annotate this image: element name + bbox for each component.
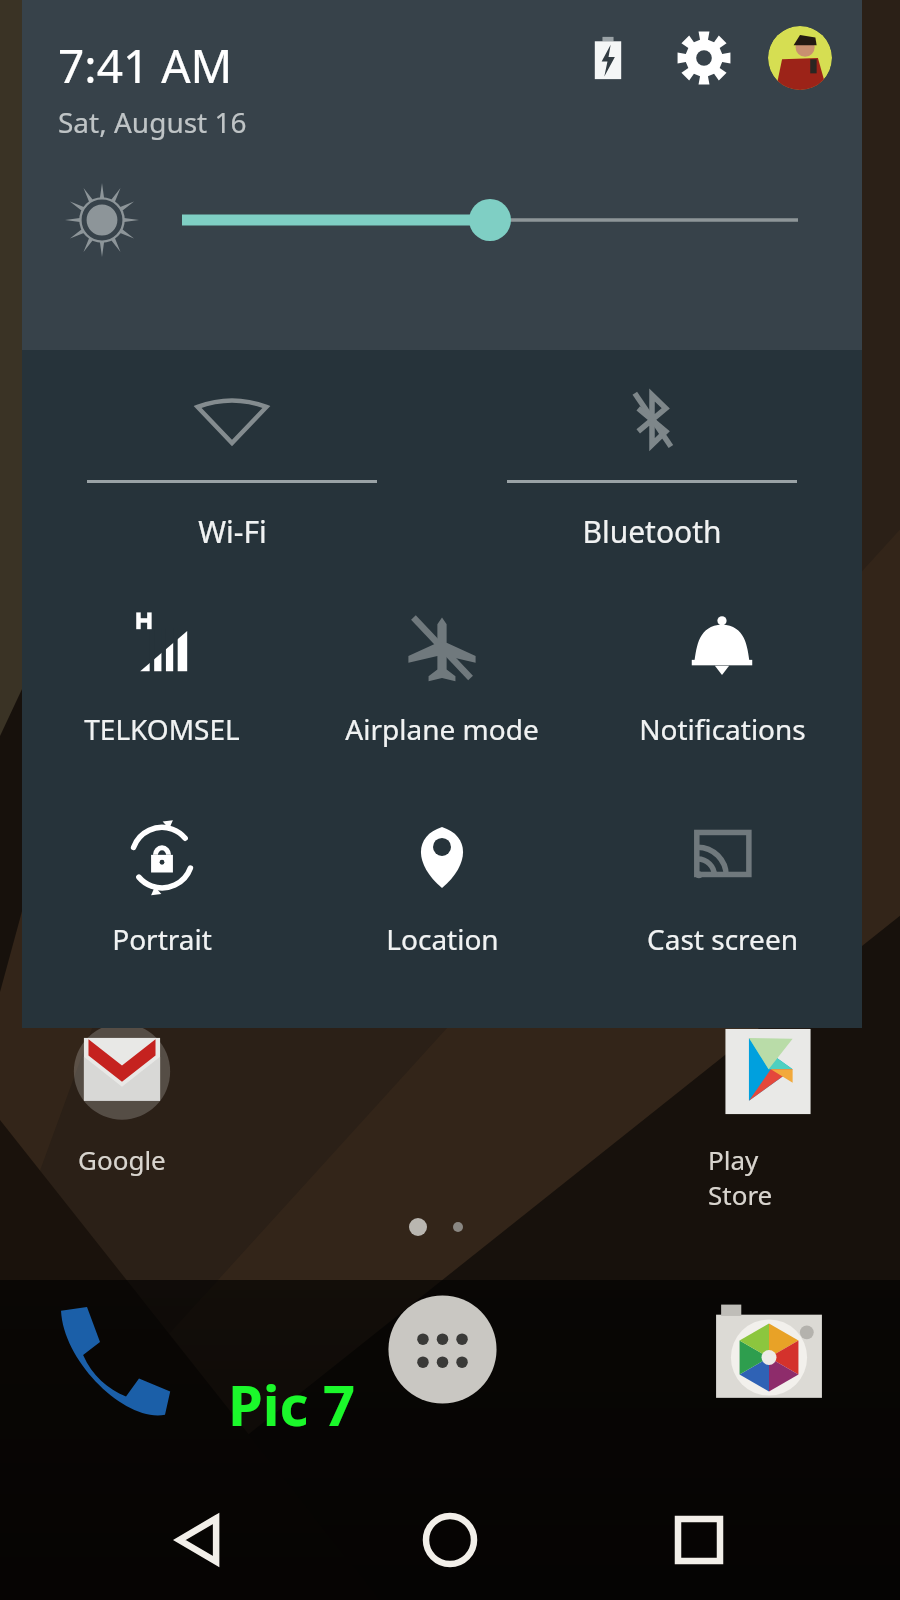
button[interactable]: Cast screen: [582, 790, 862, 1000]
staticText: TELKOMSEL: [84, 710, 240, 748]
button[interactable]: Recent apps: [651, 1492, 747, 1588]
button[interactable]: Airplane mode: [302, 580, 582, 790]
staticText: Pic 7: [228, 1366, 356, 1442]
staticText: Airplane mode: [345, 710, 539, 748]
button[interactable]: Phone: [48, 1290, 178, 1420]
staticText: Sat, August 16: [58, 103, 247, 141]
staticText: Notifications: [639, 710, 806, 748]
button[interactable]: User profile: [768, 26, 832, 90]
button[interactable]: Back: [153, 1492, 249, 1588]
staticText: Portrait: [112, 920, 212, 958]
button[interactable]: Auto brightness: [22, 160, 182, 280]
button[interactable]: TELKOMSEL: [22, 580, 302, 790]
button[interactable]: Wi-Fi: [22, 350, 442, 580]
button[interactable]: Apps: [385, 1292, 500, 1407]
button[interactable]: Portrait: [22, 790, 302, 1000]
button[interactable]: Brightness slider: [182, 160, 798, 280]
staticText: Location: [386, 920, 499, 958]
button[interactable]: Settings: [674, 28, 734, 88]
button[interactable]: Play Store: [708, 1020, 828, 1212]
staticText: Google: [78, 1142, 166, 1177]
button[interactable]: Bluetooth: [442, 350, 862, 580]
button[interactable]: Location: [302, 790, 582, 1000]
button[interactable]: Battery charging: [580, 30, 636, 86]
button[interactable]: Camera: [706, 1292, 832, 1418]
button[interactable]: Home: [402, 1492, 498, 1588]
staticText: 7:41 AM: [58, 34, 233, 97]
button[interactable]: 7:41 AM: [58, 34, 580, 141]
staticText: Play Store: [708, 1142, 828, 1212]
staticText: Bluetooth: [582, 511, 722, 552]
staticText: Wi-Fi: [198, 511, 267, 552]
button[interactable]: Google: [62, 1020, 182, 1177]
button[interactable]: Notifications: [582, 580, 862, 790]
staticText: Cast screen: [647, 920, 798, 958]
